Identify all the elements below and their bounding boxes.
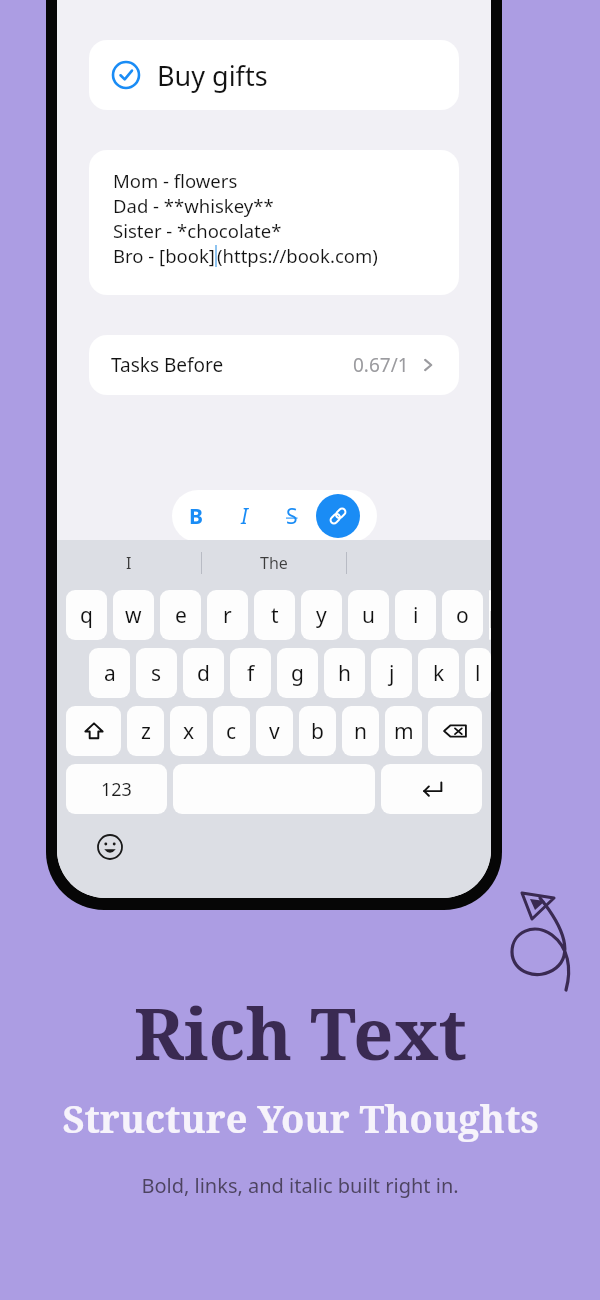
staticText: Rich Text bbox=[134, 985, 467, 1080]
other: Backspace bbox=[442, 718, 468, 744]
button[interactable]: Tasks Before bbox=[89, 335, 459, 395]
staticText: a bbox=[104, 659, 116, 688]
button[interactable]: n bbox=[342, 706, 379, 756]
button[interactable]: t bbox=[254, 590, 295, 640]
staticText: z bbox=[141, 717, 151, 746]
staticText: Buy gifts bbox=[157, 57, 268, 94]
staticText: B bbox=[189, 502, 203, 531]
button[interactable]: f bbox=[230, 648, 271, 698]
button[interactable]: Insert link bbox=[316, 494, 360, 538]
button[interactable]: h bbox=[324, 648, 365, 698]
staticText: f bbox=[247, 659, 255, 688]
button[interactable]: l bbox=[465, 648, 491, 698]
staticText: n bbox=[354, 717, 367, 746]
staticText: 123 bbox=[101, 777, 132, 802]
staticText: c bbox=[226, 717, 237, 746]
button[interactable]: q bbox=[66, 590, 107, 640]
button[interactable]: x bbox=[170, 706, 207, 756]
staticText: i bbox=[413, 601, 419, 630]
staticText: o bbox=[456, 601, 469, 630]
button[interactable]: e bbox=[160, 590, 201, 640]
staticText: x bbox=[183, 717, 195, 746]
staticText: h bbox=[338, 659, 351, 688]
button[interactable]: Mom - flowers bbox=[89, 150, 459, 295]
staticText: d bbox=[197, 659, 210, 688]
staticText: p bbox=[489, 601, 491, 630]
staticText: l bbox=[475, 659, 481, 688]
staticText: e bbox=[175, 601, 187, 630]
button[interactable]: u bbox=[348, 590, 389, 640]
button[interactable]: r bbox=[207, 590, 248, 640]
staticText: Mom - flowers bbox=[113, 168, 238, 193]
staticText: g bbox=[291, 659, 304, 688]
staticText: S bbox=[286, 502, 298, 531]
button[interactable]: I bbox=[57, 540, 201, 586]
button[interactable]: b bbox=[299, 706, 336, 756]
staticText: Structure Your Thoughts bbox=[62, 1092, 539, 1144]
staticText: m bbox=[394, 717, 414, 746]
button[interactable]: Emoji bbox=[95, 832, 125, 862]
button[interactable]: o bbox=[442, 590, 483, 640]
staticText: I bbox=[126, 552, 132, 574]
staticText: The bbox=[260, 552, 288, 574]
button[interactable]: 123 bbox=[66, 764, 167, 814]
staticText: t bbox=[271, 601, 279, 630]
staticText: 0.67/1 bbox=[353, 352, 409, 378]
button[interactable]: k bbox=[418, 648, 459, 698]
button[interactable]: s bbox=[136, 648, 177, 698]
staticText: u bbox=[362, 601, 375, 630]
staticText: Bro - [book] bbox=[113, 243, 215, 268]
staticText: y bbox=[316, 601, 327, 630]
button[interactable]: p bbox=[489, 590, 491, 640]
button[interactable]: g bbox=[277, 648, 318, 698]
staticText: s bbox=[151, 659, 162, 688]
button[interactable]: Shift bbox=[66, 706, 121, 756]
staticText: j bbox=[389, 659, 395, 688]
button[interactable]: Backspace bbox=[428, 706, 482, 756]
button[interactable]: a bbox=[89, 648, 130, 698]
other: Open tasks before bbox=[419, 356, 437, 374]
staticText: I bbox=[241, 502, 248, 531]
button[interactable]: i bbox=[395, 590, 436, 640]
button[interactable]: I bbox=[220, 490, 268, 542]
button[interactable]: Enter bbox=[381, 764, 482, 814]
staticText: (https://book.com) bbox=[217, 243, 378, 268]
button[interactable]: j bbox=[371, 648, 412, 698]
button[interactable]: Voice input bbox=[485, 830, 491, 860]
staticText: r bbox=[223, 601, 232, 630]
staticText: Bold, links, and italic built right in. bbox=[141, 1172, 459, 1199]
staticText: Tasks Before bbox=[111, 352, 224, 378]
button[interactable]: Buy gifts bbox=[89, 40, 459, 110]
other: Shift bbox=[82, 719, 106, 743]
button[interactable]: c bbox=[213, 706, 250, 756]
button[interactable]: w bbox=[113, 590, 154, 640]
button[interactable]: The bbox=[202, 540, 346, 586]
staticText: v bbox=[269, 717, 280, 746]
button[interactable]: z bbox=[127, 706, 164, 756]
button[interactable]: B bbox=[172, 490, 220, 542]
staticText: Sister - *chocolate* bbox=[113, 218, 282, 243]
button[interactable]: y bbox=[301, 590, 342, 640]
staticText: Dad - **whiskey** bbox=[113, 193, 274, 218]
button[interactable]: S bbox=[268, 490, 316, 542]
button[interactable]: d bbox=[183, 648, 224, 698]
staticText: w bbox=[125, 601, 142, 630]
staticText: q bbox=[80, 601, 93, 630]
button[interactable]: v bbox=[256, 706, 293, 756]
staticText: k bbox=[433, 659, 445, 688]
staticText: b bbox=[311, 717, 324, 746]
button[interactable]: m bbox=[385, 706, 422, 756]
